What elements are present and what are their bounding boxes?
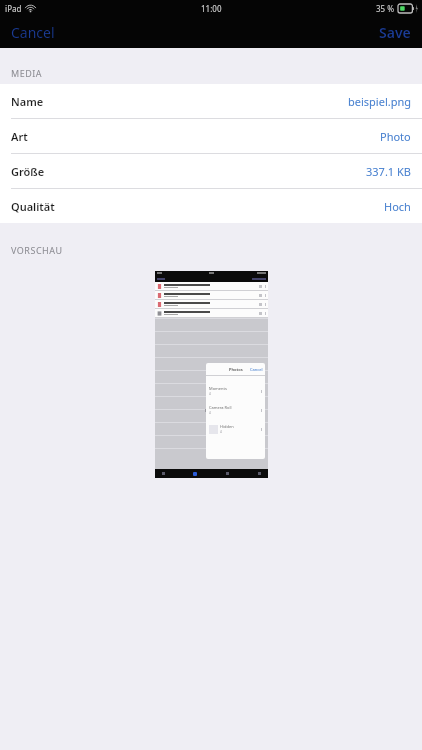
button[interactable]: Name — [0, 84, 422, 119]
staticText: Hidden — [220, 424, 234, 429]
staticText: Photos — [229, 367, 243, 372]
button[interactable]: Save — [368, 17, 422, 48]
staticText: VORSCHAU — [11, 244, 63, 256]
staticText: Art — [11, 129, 28, 144]
button[interactable]: Größe — [0, 154, 422, 189]
staticText: Camera Roll — [209, 405, 232, 410]
staticText: 35 % — [376, 3, 395, 14]
staticText: 4 — [220, 430, 222, 434]
staticText: Photo — [380, 129, 411, 144]
staticText: Moments — [209, 386, 227, 391]
staticText: Save — [379, 23, 411, 42]
staticText: 4 — [209, 392, 211, 396]
staticText: beispiel.png — [348, 94, 411, 109]
other: Preview image — [155, 271, 268, 478]
staticText: Cancel — [11, 23, 55, 42]
staticText: Name — [11, 94, 44, 109]
staticText: Hoch — [384, 199, 411, 214]
button[interactable]: Cancel — [0, 17, 66, 48]
staticText: Cancel — [250, 367, 263, 372]
button[interactable]: Qualität — [0, 189, 422, 223]
staticText: 4 — [209, 411, 211, 415]
staticText: Qualität — [11, 199, 55, 214]
staticText: 337.1 KB — [366, 164, 411, 179]
staticText: iPad — [5, 3, 22, 14]
staticText: MEDIA — [11, 67, 43, 79]
button[interactable]: Art — [0, 119, 422, 154]
staticText: 11:00 — [201, 3, 222, 14]
staticText: Größe — [11, 164, 45, 179]
